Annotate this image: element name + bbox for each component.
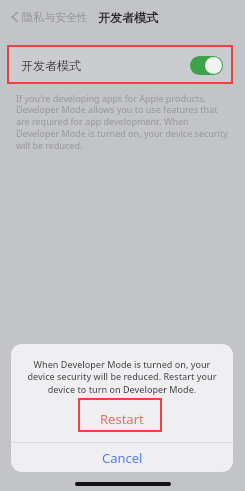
staticText: Cancel [102, 449, 143, 467]
staticText: When Developer Mode is turned on, your d… [23, 358, 221, 396]
button[interactable]: 隐私与安全性 [6, 6, 92, 28]
staticText: Restart [100, 410, 144, 428]
button[interactable]: Cancel [11, 443, 233, 472]
staticText: 隐私与安全性 [22, 10, 88, 24]
button[interactable]: Restart [11, 396, 233, 442]
button[interactable]: 开发者模式 [7, 47, 233, 83]
staticText: 开发者模式 [98, 10, 158, 25]
staticText: If you're developing apps for Apple prod… [16, 92, 229, 152]
staticText: 开发者模式 [21, 58, 81, 73]
